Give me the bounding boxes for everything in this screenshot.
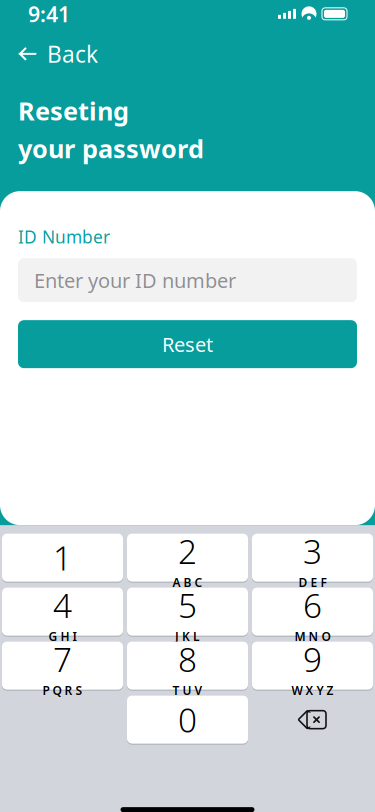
staticText: Enter your ID number	[34, 267, 236, 293]
staticText: 9	[303, 637, 322, 681]
button[interactable]: 3	[252, 533, 373, 582]
staticText: 2	[178, 529, 197, 573]
staticText: 8	[178, 637, 197, 681]
button[interactable]: Back	[0, 36, 375, 72]
button[interactable]: Delete	[252, 695, 373, 744]
staticText: D E F	[298, 574, 326, 590]
staticText: 7	[53, 637, 72, 681]
staticText: 6	[303, 583, 322, 627]
staticText: 1	[53, 535, 72, 580]
staticText: G H I	[48, 628, 76, 644]
staticText: 0	[178, 697, 197, 742]
staticText: T U V	[172, 682, 202, 698]
button[interactable]: 4	[2, 587, 123, 636]
staticText: Reset	[162, 331, 213, 357]
staticText: J K L	[175, 628, 200, 644]
button[interactable]: 7	[2, 641, 123, 690]
staticText: W X Y Z	[291, 682, 333, 698]
button[interactable]: 0	[127, 695, 248, 744]
staticText: A B C	[172, 574, 202, 590]
staticText: your password	[18, 131, 204, 165]
button[interactable]: 2	[127, 533, 248, 582]
button[interactable]: 8	[127, 641, 248, 690]
button[interactable]: Reset	[0, 320, 375, 368]
button[interactable]: 6	[252, 587, 373, 636]
staticText: 4	[53, 583, 72, 627]
button[interactable]: 1	[2, 533, 123, 582]
staticText: 3	[303, 529, 322, 573]
staticText: M N O	[294, 628, 330, 644]
staticText: ID Number	[18, 225, 110, 248]
button[interactable]: Enter your ID number	[0, 258, 375, 302]
staticText: P Q R S	[42, 682, 82, 698]
staticText: 9:41	[28, 0, 70, 28]
staticText: Back	[47, 39, 98, 69]
staticText: 5	[178, 583, 197, 627]
button[interactable]: 9	[252, 641, 373, 690]
button[interactable]: 5	[127, 587, 248, 636]
staticText: Reseting	[18, 94, 129, 127]
